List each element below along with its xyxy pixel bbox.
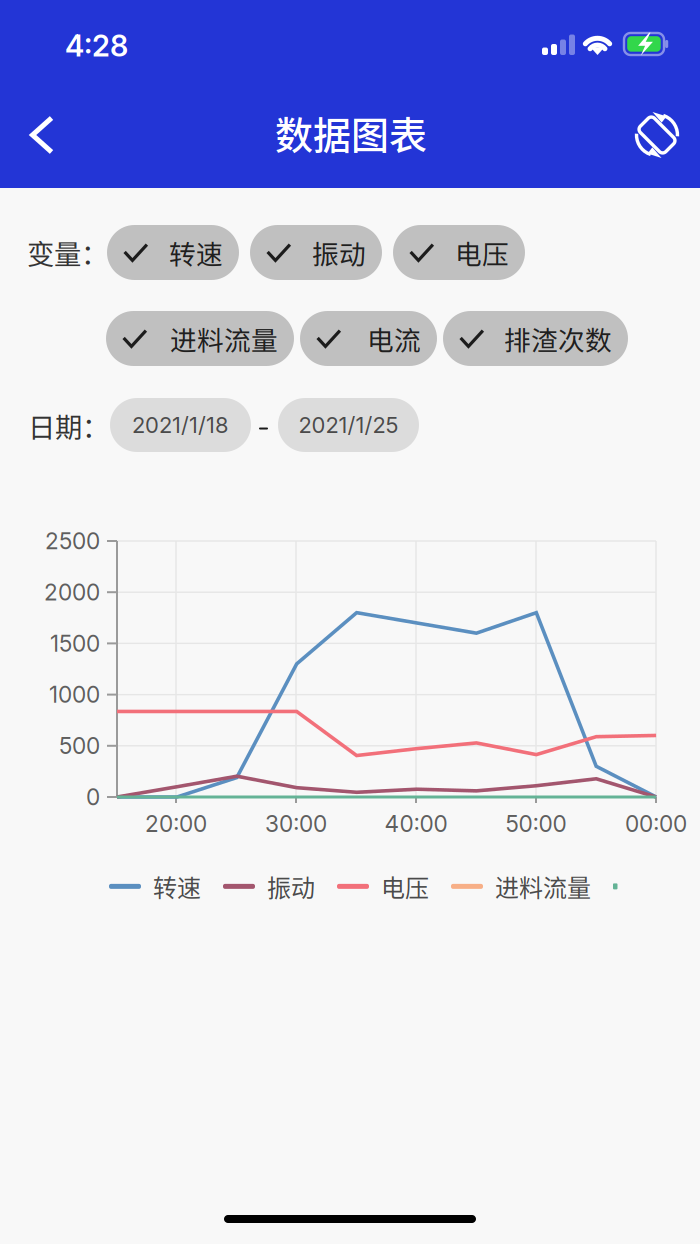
staticText: 进料流量 (495, 869, 591, 904)
staticText: 40:00 (384, 810, 447, 837)
staticText: 2000 (44, 578, 100, 606)
staticText: 20:00 (145, 810, 207, 837)
button[interactable]: 振动 (250, 225, 382, 280)
staticText: 电压 (381, 869, 429, 904)
staticText: 变量： (27, 233, 108, 272)
staticText: 排渣次数 (504, 319, 612, 358)
staticText: 500 (59, 732, 100, 759)
staticText: 50:00 (505, 810, 566, 837)
button[interactable]: 2021/1/25 (278, 398, 419, 452)
staticText: 30:00 (265, 810, 327, 837)
button[interactable]: 电流 (300, 311, 437, 366)
button[interactable]: 进料流量 (106, 311, 294, 366)
staticText: 2500 (45, 527, 100, 555)
button[interactable]: Back (18, 111, 65, 158)
button[interactable]: 电压 (393, 225, 525, 280)
staticText: 电压 (455, 233, 509, 272)
staticText: 2021/1/25 (298, 412, 398, 438)
button[interactable]: 转速 (107, 225, 239, 280)
button[interactable]: Rotate screen (631, 109, 683, 161)
staticText: 00:00 (625, 810, 687, 837)
button[interactable]: 排渣次数 (443, 311, 628, 366)
staticText: 日期： (28, 406, 109, 446)
staticText: 0 (86, 783, 100, 811)
staticText: 1000 (49, 681, 100, 708)
staticText: 4:28 (65, 28, 128, 63)
staticText: 振动 (267, 869, 315, 904)
staticText: 进料流量 (170, 319, 278, 358)
staticText: 2021/1/18 (132, 412, 229, 438)
staticText: 数据图表 (275, 105, 427, 160)
staticText: 转速 (169, 233, 223, 272)
staticText: 振动 (312, 233, 366, 272)
staticText: 1500 (50, 630, 100, 657)
staticText: 电流 (367, 319, 421, 358)
staticText: 转速 (153, 869, 201, 904)
button[interactable]: 2021/1/18 (110, 398, 251, 452)
